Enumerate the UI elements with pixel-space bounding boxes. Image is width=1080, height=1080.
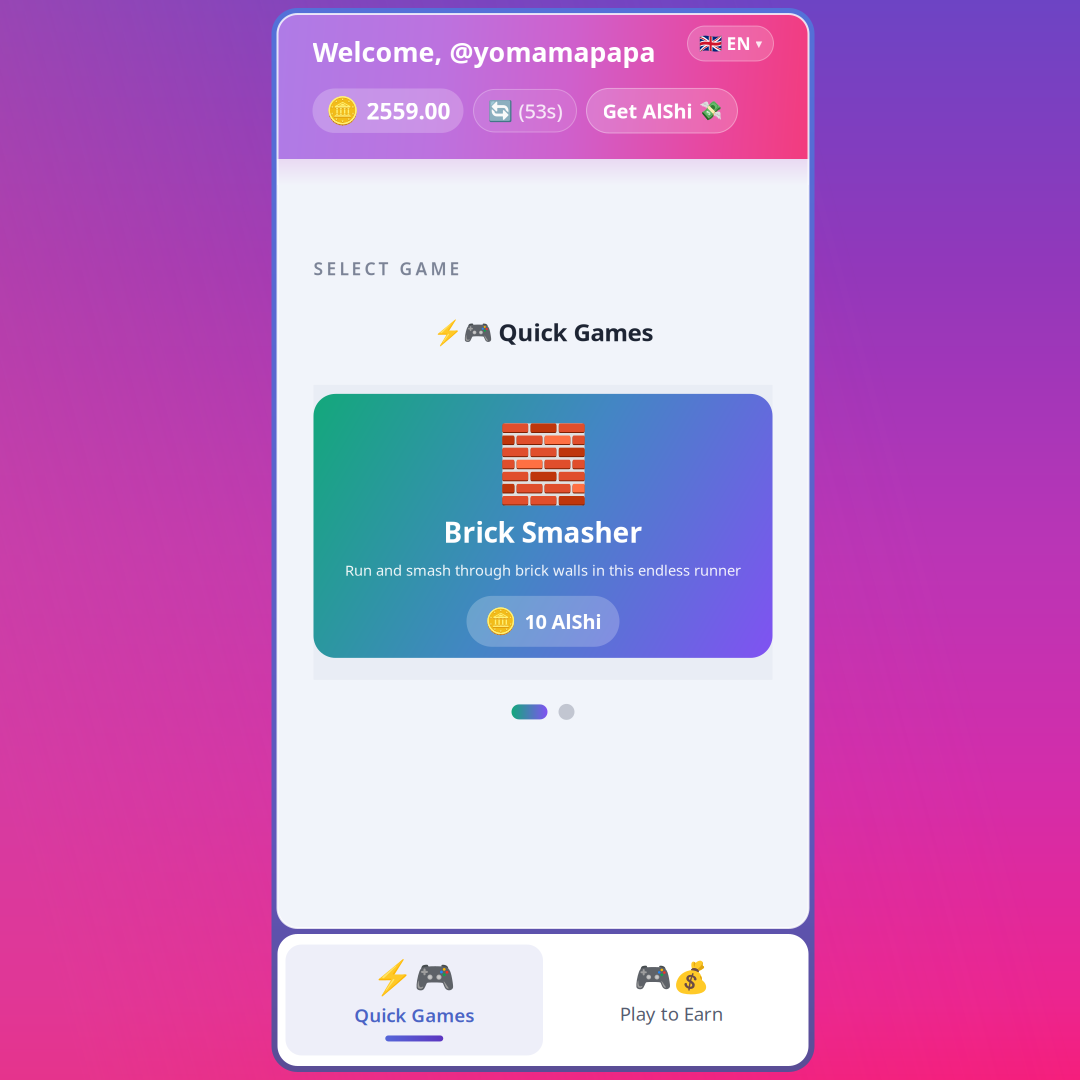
button[interactable]: Get AlShi — [586, 88, 737, 133]
staticText: 10 AlShi — [524, 608, 601, 635]
staticText: 🇬🇧 — [698, 33, 721, 54]
staticText: Quick Games — [354, 1003, 474, 1027]
staticText: 🎮💰 — [634, 960, 710, 995]
button[interactable]: 🇬🇧 — [687, 14, 773, 61]
staticText: (53s) — [518, 97, 562, 124]
button[interactable]: 🎮💰 — [543, 946, 800, 1054]
staticText: 💸 — [698, 100, 721, 121]
staticText: Play to Earn — [620, 1001, 724, 1026]
staticText: 2559.00 — [366, 96, 450, 126]
staticText: ▾ — [755, 36, 762, 51]
staticText: 🪙 — [484, 607, 516, 636]
staticText: Run and smash through brick walls in thi… — [345, 560, 741, 580]
staticText: 🔄 — [487, 99, 512, 122]
button[interactable]: 🔄 — [473, 89, 576, 132]
staticText: EN — [726, 32, 750, 55]
staticText: Welcome, @yomamapapa — [312, 34, 655, 69]
button[interactable]: 🪙 — [312, 88, 463, 133]
staticText: Get AlShi — [602, 97, 692, 124]
staticText: 🪙 — [325, 95, 358, 126]
staticText: Brick Smasher — [443, 513, 642, 550]
staticText: 🧱 — [496, 422, 589, 507]
button[interactable]: ⚡🎮 — [285, 945, 543, 1055]
button[interactable]: 🧱 — [313, 394, 772, 658]
staticText: ⚡🎮 Quick Games — [432, 316, 653, 348]
staticText: ⚡🎮 — [372, 959, 456, 997]
staticText: S E L E C T G A M E — [313, 257, 459, 280]
